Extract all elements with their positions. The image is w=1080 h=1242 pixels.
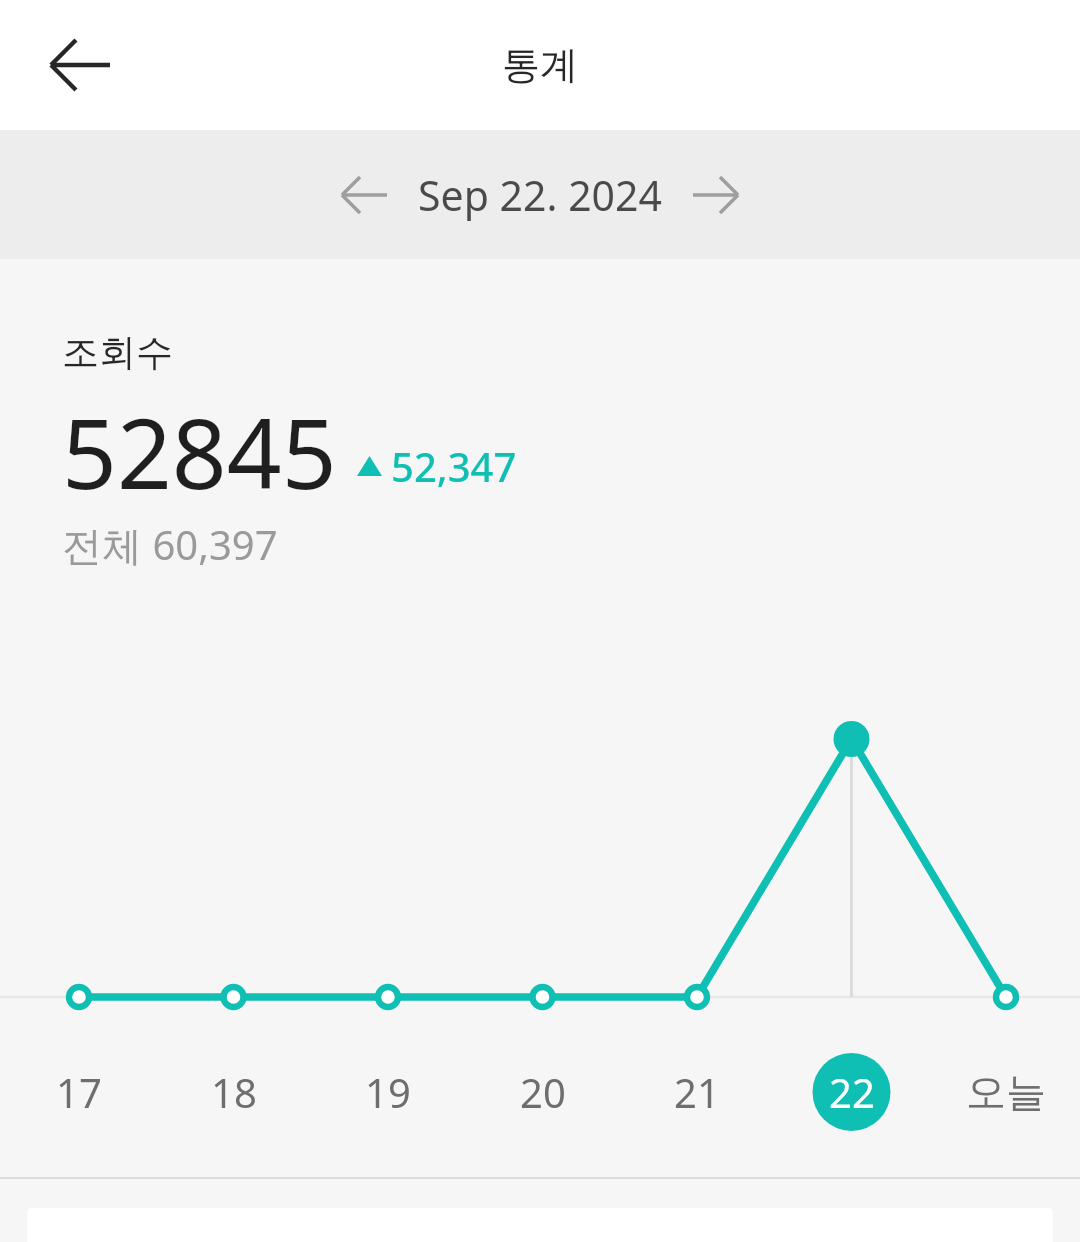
button[interactable]: Next day: [671, 150, 761, 240]
staticText: 21: [674, 1065, 720, 1119]
staticText: 17: [56, 1065, 102, 1119]
button[interactable]: 19: [333, 1052, 443, 1132]
staticText: 전체 60,397: [62, 517, 278, 572]
staticText: 조회수: [62, 329, 173, 376]
button[interactable]: Previous day: [319, 150, 409, 240]
staticText: 통계: [502, 41, 578, 89]
button[interactable]: 20: [488, 1052, 598, 1132]
button[interactable]: 오늘: [951, 1052, 1061, 1132]
staticText: 19: [365, 1065, 411, 1119]
button[interactable]: 22: [797, 1052, 907, 1132]
button[interactable]: 21: [642, 1052, 752, 1132]
button[interactable]: Back: [24, 9, 136, 121]
button[interactable]: 18: [179, 1052, 289, 1132]
staticText: 오늘: [966, 1067, 1046, 1117]
staticText: 20: [520, 1065, 566, 1119]
staticText: 18: [211, 1065, 257, 1119]
button[interactable]: 17: [24, 1052, 134, 1132]
staticText: 52845: [62, 386, 337, 517]
staticText: 52,347: [391, 439, 517, 493]
button[interactable]: Sep 22. 2024: [409, 150, 671, 240]
staticText: 22: [829, 1065, 875, 1119]
staticText: Sep 22. 2024: [418, 167, 662, 223]
